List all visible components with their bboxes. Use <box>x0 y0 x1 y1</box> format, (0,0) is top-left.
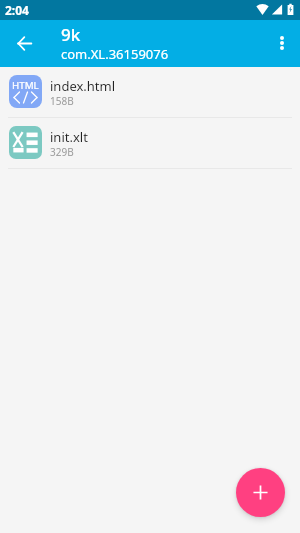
button[interactable]: init.xlt <box>0 118 300 168</box>
staticText: init.xlt <box>50 128 88 146</box>
staticText: 9k <box>61 23 81 46</box>
staticText: HTML <box>12 79 39 92</box>
staticText: com.XL.36159076 <box>61 45 169 63</box>
button[interactable]: Back <box>5 24 43 62</box>
staticText: index.html <box>50 77 116 95</box>
staticText: 2:04 <box>5 2 29 18</box>
staticText: 158B <box>50 94 74 108</box>
button[interactable]: More options <box>264 25 300 61</box>
button[interactable]: HTML <box>0 67 300 117</box>
button[interactable]: Add <box>236 468 285 517</box>
staticText: 329B <box>50 145 74 159</box>
